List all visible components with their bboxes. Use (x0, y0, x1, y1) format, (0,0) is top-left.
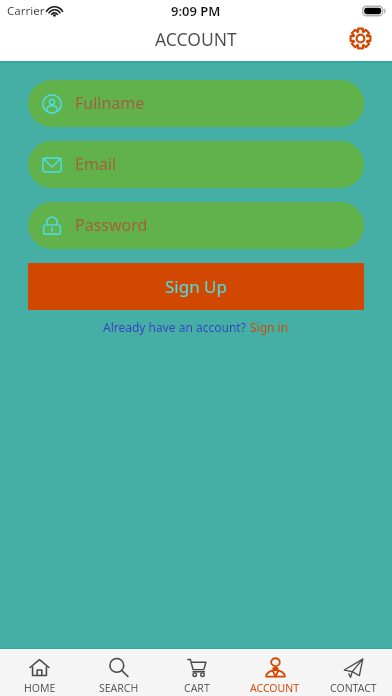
button[interactable]: HOME (0, 649, 79, 696)
staticText: Password (75, 214, 148, 236)
button[interactable]: Sign Up (28, 263, 364, 310)
staticText: ACCOUNT (155, 27, 237, 51)
staticText: CONTACT (330, 681, 377, 695)
staticText: CART (184, 681, 210, 695)
button[interactable]: CART (158, 649, 236, 696)
staticText: Already have an account? (103, 319, 250, 335)
staticText: Carrier (7, 3, 45, 19)
staticText: ACCOUNT (250, 681, 300, 695)
button[interactable]: Sign in (250, 319, 289, 335)
staticText: Sign Up (165, 275, 227, 298)
button[interactable]: Email (28, 141, 364, 188)
staticText: SEARCH (99, 681, 139, 695)
staticText: Sign in (250, 319, 289, 335)
staticText: 9:09 PM (171, 2, 221, 20)
button[interactable]: Password (28, 202, 364, 249)
staticText: Fullname (75, 92, 145, 114)
button[interactable]: CONTACT (314, 649, 392, 696)
button[interactable]: ACCOUNT (236, 649, 314, 696)
button[interactable]: Settings (344, 22, 376, 54)
button[interactable]: SEARCH (79, 649, 158, 696)
staticText: HOME (24, 681, 56, 695)
staticText: Email (75, 153, 117, 175)
button[interactable]: Fullname (28, 80, 364, 127)
